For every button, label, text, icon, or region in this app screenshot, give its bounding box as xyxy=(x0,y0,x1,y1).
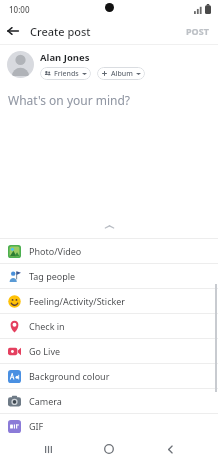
staticText: Alan Jones xyxy=(40,51,90,64)
button[interactable]: Go Live xyxy=(0,339,218,363)
staticText: Tag people xyxy=(29,270,76,282)
staticText: Friends xyxy=(54,69,79,79)
staticText: Check in xyxy=(29,320,65,332)
button[interactable]: Camera xyxy=(0,389,218,413)
staticText: Feeling/Activity/Sticker xyxy=(29,295,126,307)
staticText: Camera xyxy=(29,395,62,407)
button[interactable]: Photo/Video xyxy=(0,239,218,263)
staticText: Background colour xyxy=(29,370,110,382)
button[interactable]: POST xyxy=(177,21,218,41)
staticText: POST xyxy=(186,25,209,37)
staticText: Photo/Video xyxy=(29,245,82,257)
button[interactable]: Tag people xyxy=(0,264,218,288)
button[interactable]: GIF xyxy=(0,414,218,438)
button[interactable]: Feeling/Activity/Sticker xyxy=(0,289,218,313)
staticText: 10:00 xyxy=(9,4,30,15)
button[interactable]: Collapse xyxy=(0,216,218,238)
button[interactable]: Back xyxy=(0,18,26,44)
button[interactable]: Home xyxy=(96,438,122,460)
button[interactable]: Profile photo xyxy=(7,51,34,78)
staticText: Go Live xyxy=(29,345,61,357)
button[interactable]: Recents xyxy=(35,438,61,460)
button[interactable]: Background colour xyxy=(0,364,218,388)
staticText: Create post xyxy=(30,24,91,39)
staticText: GIF xyxy=(29,420,44,432)
button[interactable]: Back xyxy=(157,438,183,460)
button[interactable]: Check in xyxy=(0,314,218,338)
staticText: What's on your mind? xyxy=(8,92,131,108)
button[interactable]: Friends xyxy=(40,67,91,80)
button[interactable]: Album xyxy=(97,67,145,80)
staticText: Album xyxy=(111,69,133,79)
